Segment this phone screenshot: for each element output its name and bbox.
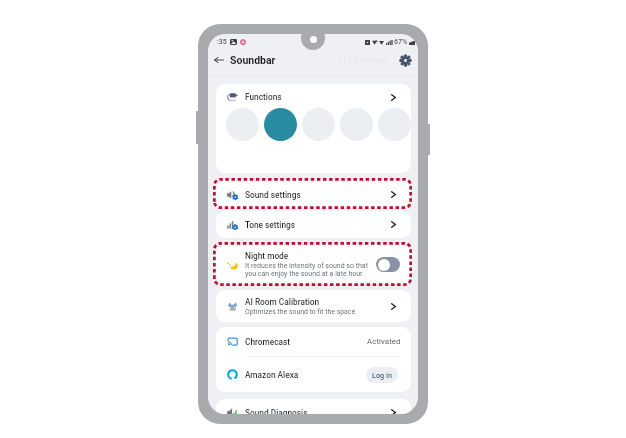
button[interactable]: Night mode: [227, 245, 400, 284]
staticText: :35: [217, 38, 227, 46]
staticText: Functions: [245, 92, 282, 102]
staticText: Activated: [367, 337, 401, 346]
button[interactable]: Functions: [227, 84, 396, 110]
button[interactable]: Function 4: [340, 108, 373, 141]
staticText: It reduces the intensity of sound so tha…: [245, 262, 368, 270]
button[interactable]: AI Room Calibration: [227, 290, 396, 322]
button[interactable]: Function 1: [226, 108, 259, 141]
button[interactable]: Chromecast: [227, 327, 401, 356]
button[interactable]: Amazon Alexa: [227, 357, 398, 392]
button[interactable]: Night mode toggle: [376, 257, 400, 272]
button[interactable]: Function 2: [264, 108, 297, 141]
staticText: TV Remote: [348, 56, 388, 65]
staticText: Night mode: [245, 251, 289, 261]
staticText: Amazon Alexa: [245, 370, 299, 380]
button[interactable]: Function 3: [302, 108, 335, 141]
staticText: you can enjoy the sound at a late hour.: [245, 270, 364, 278]
staticText: Sound settings: [245, 190, 301, 200]
staticText: Chromecast: [245, 337, 291, 347]
staticText: Tone settings: [245, 220, 296, 230]
staticText: Sound Diagnosis: [245, 408, 308, 414]
button[interactable]: Sound Diagnosis: [227, 399, 396, 414]
staticText: Log in: [372, 371, 392, 380]
button[interactable]: Settings: [397, 52, 413, 68]
staticText: Optimizes the sound to fit the space.: [245, 308, 357, 316]
button[interactable]: Log in: [366, 367, 398, 383]
staticText: AI Room Calibration: [245, 297, 320, 307]
button[interactable]: Back: [211, 52, 227, 68]
button[interactable]: Sound settings: [227, 181, 396, 208]
button[interactable]: Tone settings: [227, 211, 396, 238]
staticText: Soundbar: [230, 54, 276, 66]
staticText: 67%: [394, 38, 408, 46]
button[interactable]: Function 5: [378, 108, 411, 141]
